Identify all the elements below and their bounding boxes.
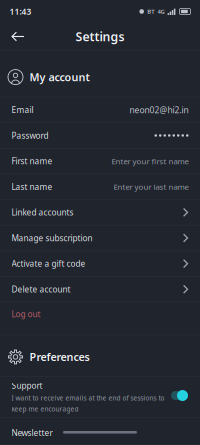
staticText: Enter your first name — [111, 156, 188, 166]
button[interactable]: Delete account — [0, 277, 200, 302]
button[interactable]: Activate a gift code — [0, 251, 200, 277]
staticText: Activate a gift code — [11, 258, 85, 269]
button[interactable]: Password — [0, 123, 200, 149]
button[interactable]: First name — [0, 149, 200, 174]
button[interactable]: Back — [0, 23, 36, 50]
button[interactable]: Log out — [0, 302, 200, 325]
staticText: Log out — [11, 308, 40, 319]
staticText: Last name — [11, 181, 52, 192]
staticText: BT — [147, 8, 154, 15]
staticText: I want to receive emails at the end of s… — [11, 394, 164, 402]
staticText: Support — [11, 380, 42, 391]
button[interactable]: Newsletter — [0, 418, 200, 445]
button[interactable]: Support — [0, 377, 200, 418]
staticText: 4G — [157, 8, 164, 15]
staticText: Password — [11, 130, 48, 141]
staticText: Settings — [75, 28, 124, 45]
staticText: Manage subscription — [11, 232, 92, 243]
staticText: Delete account — [11, 284, 70, 295]
staticText: Newsletter — [11, 427, 52, 438]
staticText: My account — [29, 70, 89, 84]
staticText: Enter your last name — [113, 182, 188, 192]
staticText: neon02@hi2.in — [129, 104, 188, 115]
staticText: keep me encouraged — [11, 405, 78, 413]
staticText: First name — [11, 156, 52, 167]
staticText: Email — [11, 104, 33, 115]
staticText: Preferences — [29, 350, 89, 364]
staticText: 11:43 — [9, 6, 31, 17]
button[interactable]: Linked accounts — [0, 200, 200, 225]
button[interactable]: Email — [0, 97, 200, 123]
button[interactable]: Last name — [0, 174, 200, 200]
staticText: Linked accounts — [11, 207, 73, 218]
button[interactable]: Manage subscription — [0, 225, 200, 251]
